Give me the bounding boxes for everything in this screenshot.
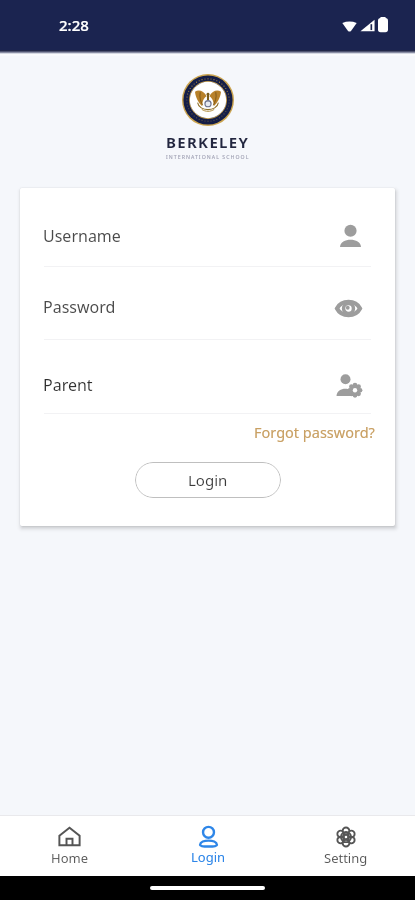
button[interactable]: Forgot password? [250, 418, 379, 446]
staticText: Home [51, 849, 88, 867]
other: Username [340, 225, 361, 247]
staticText: Username [43, 225, 340, 247]
staticText: Password [43, 296, 336, 318]
button[interactable]: Login [139, 821, 277, 871]
other: Show password [336, 299, 361, 318]
staticText: Login [191, 848, 226, 866]
staticText: Forgot password? [254, 422, 375, 442]
button[interactable]: Password [20, 267, 395, 339]
other: Select role [336, 374, 361, 396]
button[interactable]: Setting [277, 821, 415, 872]
staticText: INTERNATIONAL SCHOOL [166, 153, 250, 160]
staticText: Login [188, 470, 228, 490]
button[interactable]: Parent [20, 340, 395, 413]
button[interactable]: Login [135, 462, 281, 498]
staticText: Parent [43, 374, 336, 396]
staticText: 2:28 [59, 15, 89, 35]
button[interactable]: Home [0, 820, 139, 872]
staticText: BERKELEY [166, 132, 250, 152]
button[interactable]: Username [20, 188, 395, 266]
staticText: Setting [324, 849, 368, 867]
